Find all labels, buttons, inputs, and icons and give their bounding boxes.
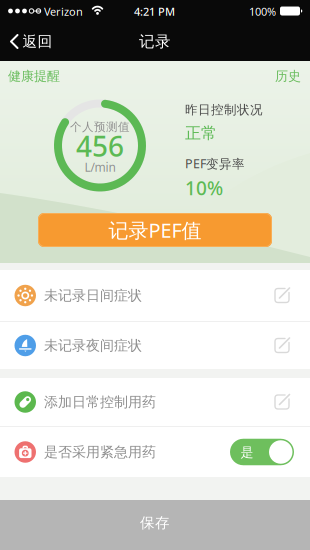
staticText: 是否采用紧急用药 — [44, 443, 156, 461]
staticText: 记录 — [139, 32, 171, 51]
staticText: Verizon — [44, 4, 83, 19]
staticText: 保存 — [140, 514, 170, 532]
staticText: PEF变异率 — [185, 155, 245, 172]
button[interactable]: 记录PEF值 — [38, 213, 272, 247]
staticText: 个人预测值 — [70, 120, 130, 134]
staticText: 记录PEF值 — [108, 216, 201, 244]
staticText: 添加日常控制用药 — [44, 393, 156, 411]
staticText: 健康提醒 — [8, 68, 60, 84]
staticText: 正常 — [185, 123, 217, 143]
button[interactable]: 添加日常控制用药 — [0, 391, 310, 413]
button[interactable]: 未记录日间症状 — [0, 285, 310, 306]
staticText: 昨日控制状况 — [185, 102, 263, 118]
staticText: 未记录日间症状 — [44, 287, 142, 304]
button[interactable]: 是否采用紧急用药 — [230, 439, 294, 465]
staticText: 历史 — [275, 68, 301, 84]
staticText: 100% — [249, 4, 276, 19]
staticText: 10% — [185, 175, 223, 201]
staticText: 返回 — [22, 32, 52, 51]
button[interactable]: 保存 — [0, 500, 310, 550]
button[interactable]: 返回 — [3, 22, 52, 61]
staticText: 是 — [240, 444, 253, 461]
button[interactable]: 历史 — [275, 68, 301, 84]
staticText: 456 — [76, 127, 124, 165]
staticText: 4:21 PM — [134, 4, 175, 19]
staticText: L/min — [84, 159, 115, 175]
button[interactable]: 未记录夜间症状 — [0, 335, 310, 356]
staticText: 未记录夜间症状 — [44, 337, 142, 354]
